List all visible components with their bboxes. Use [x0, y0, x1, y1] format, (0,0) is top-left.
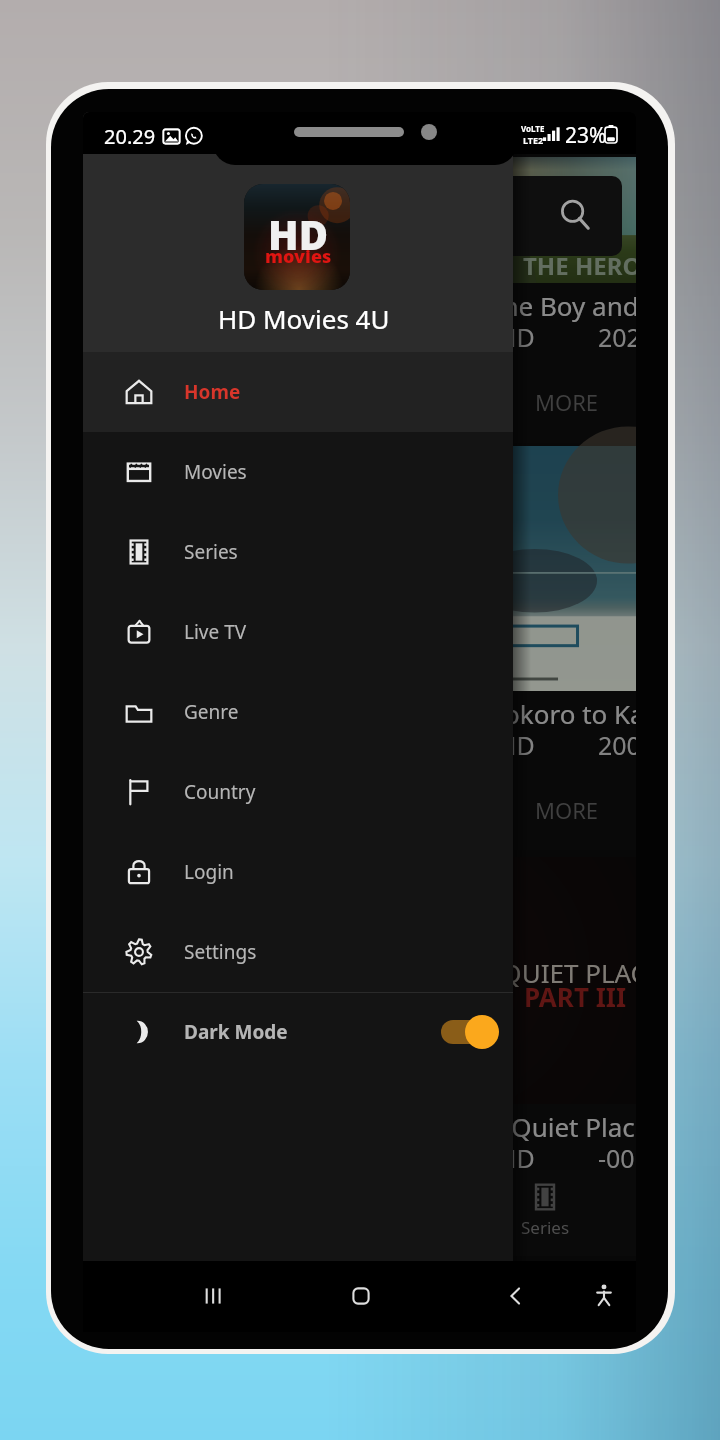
- staticText: 20.29: [104, 123, 156, 150]
- button[interactable]: Search: [234, 176, 622, 256]
- staticText: Settings: [184, 939, 257, 965]
- staticText: HD: [498, 1141, 535, 1175]
- staticText: THE HERON: [523, 249, 636, 282]
- staticText: HD: [498, 728, 535, 762]
- staticText: Series: [521, 1216, 570, 1239]
- button[interactable]: Login: [83, 832, 513, 912]
- button[interactable]: Genre: [83, 672, 513, 752]
- staticText: 2008: [598, 728, 636, 762]
- staticText: A Quiet Place...: [488, 1109, 636, 1144]
- staticText: Genre: [184, 699, 239, 725]
- staticText: 2023: [598, 320, 636, 354]
- button[interactable]: Dark Mode: [83, 993, 513, 1071]
- staticText: Home: [184, 379, 241, 405]
- button[interactable]: Home: [342, 1277, 380, 1315]
- button[interactable]: Series: [83, 512, 513, 592]
- button[interactable]: MORE: [535, 387, 599, 417]
- staticText: -0000: [598, 1141, 636, 1175]
- staticText: LTE2: [523, 134, 544, 146]
- staticText: Login: [184, 859, 234, 885]
- button[interactable]: Live TV: [83, 592, 513, 672]
- staticText: Country: [184, 779, 256, 805]
- button[interactable]: Home: [83, 352, 513, 432]
- button[interactable]: Back: [497, 1277, 535, 1315]
- button[interactable]: Accessibility: [585, 1277, 623, 1315]
- staticText: movies: [265, 244, 332, 269]
- staticText: VoLTE: [521, 123, 545, 134]
- staticText: Live TV: [184, 619, 247, 645]
- button[interactable]: Recents: [195, 1277, 233, 1315]
- button[interactable]: Settings: [83, 912, 513, 992]
- button[interactable]: Country: [83, 752, 513, 832]
- staticText: A QUIET PLACE: [478, 955, 636, 990]
- staticText: MORE: [535, 387, 599, 417]
- staticText: The Boy and...: [488, 288, 636, 323]
- staticText: Dark Mode: [184, 1019, 288, 1045]
- button[interactable]: [435, 1012, 497, 1052]
- staticText: HD Movies 4U: [218, 301, 390, 336]
- staticText: MORE: [535, 795, 599, 825]
- button[interactable]: MORE: [535, 795, 599, 825]
- staticText: Series: [184, 539, 238, 565]
- button[interactable]: Movies: [83, 432, 513, 512]
- staticText: HD: [268, 207, 328, 261]
- staticText: Kokoro to Kar...: [488, 696, 636, 731]
- button[interactable]: Series: [515, 1182, 575, 1239]
- staticText: HD: [498, 320, 535, 354]
- staticText: Movies: [184, 459, 247, 485]
- staticText: 23%: [565, 121, 607, 150]
- staticText: PART III: [524, 979, 626, 1014]
